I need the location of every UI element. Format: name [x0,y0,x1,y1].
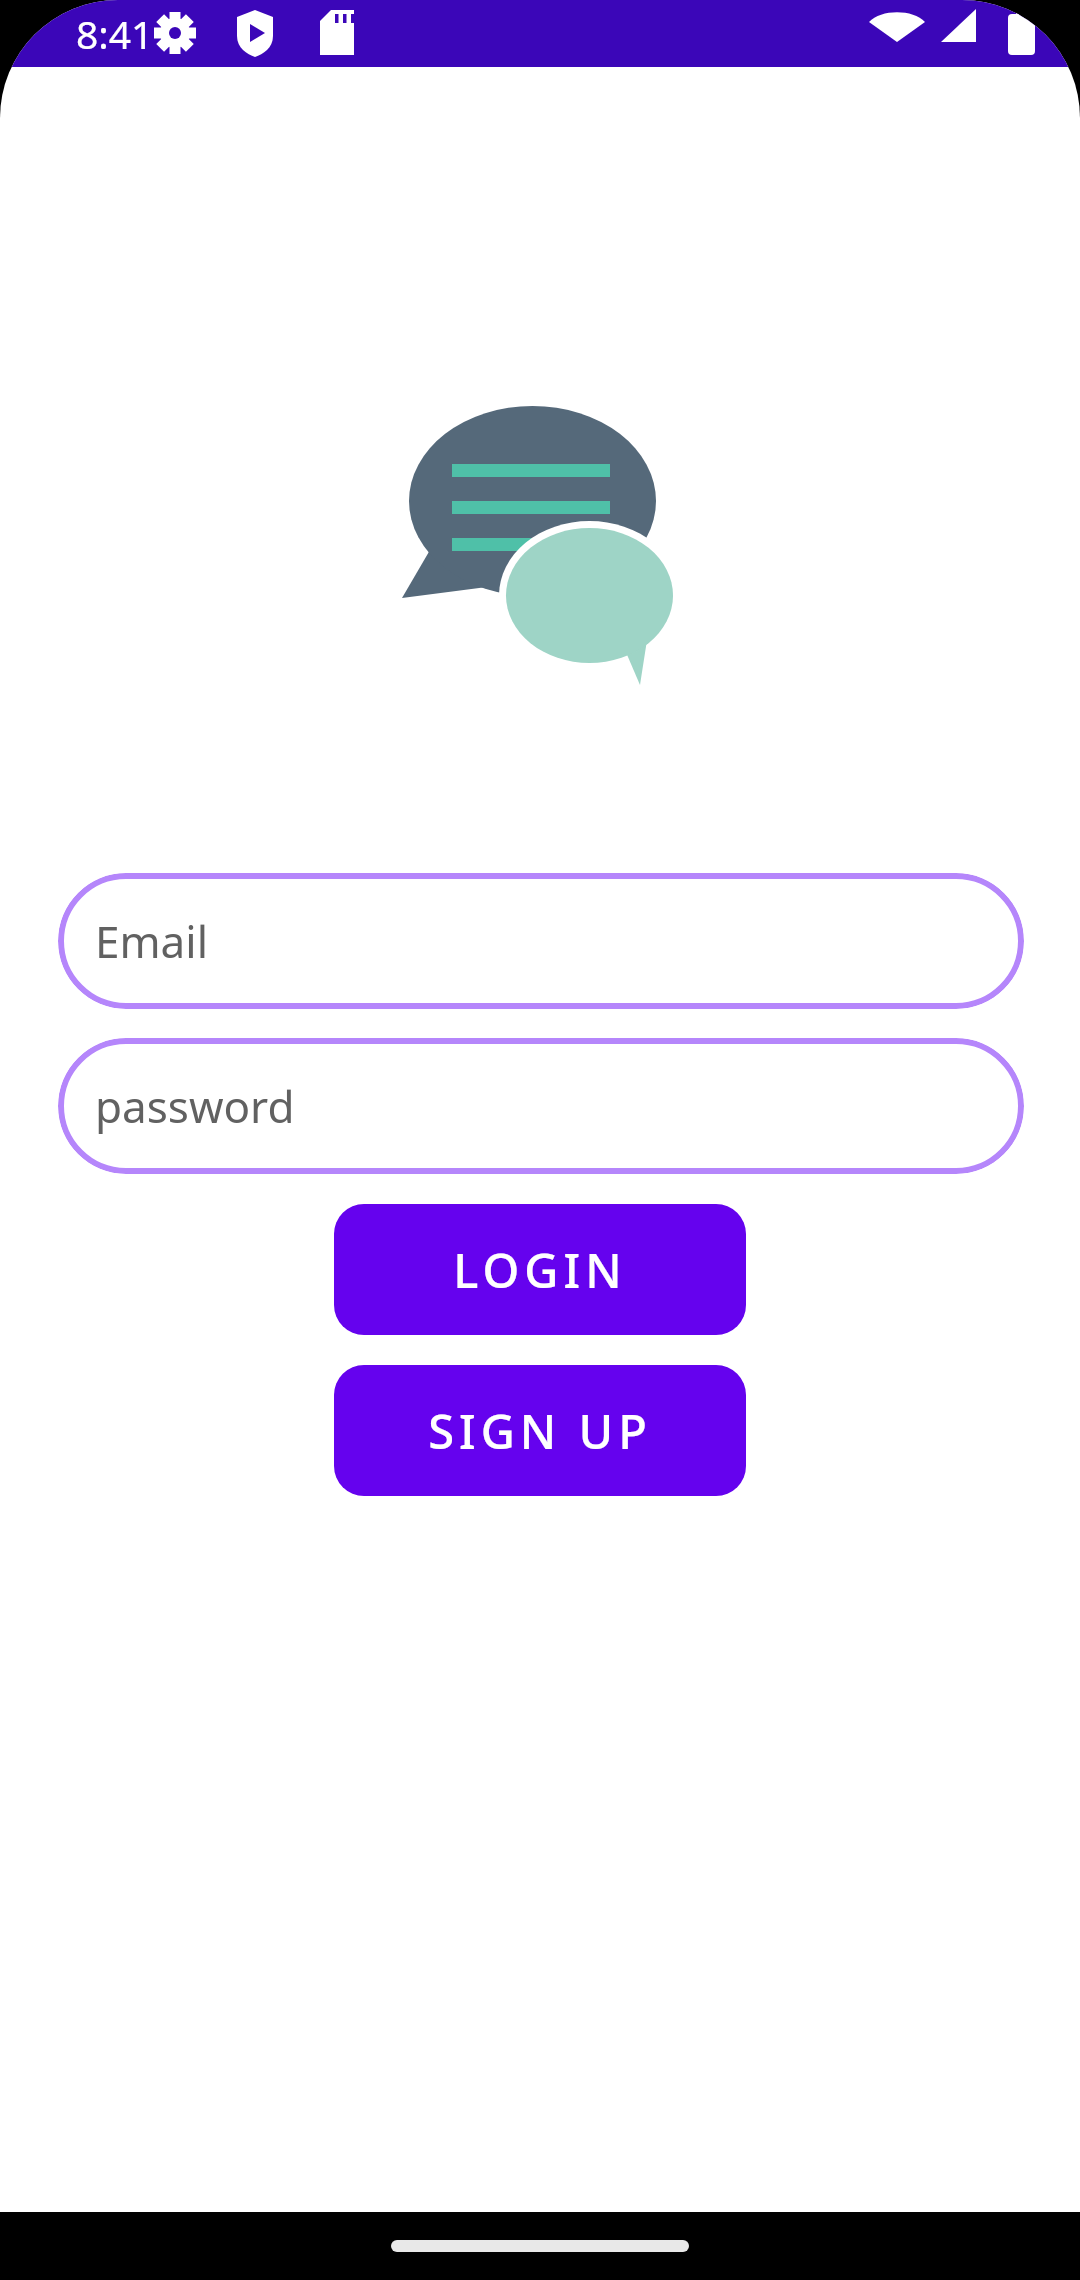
button[interactable]: LOGIN [334,1204,746,1335]
staticText: 8:41 [76,7,154,60]
button[interactable]: SIGN UP [334,1365,746,1496]
staticText: password [95,1076,295,1136]
other: Chat logo [400,400,690,690]
button[interactable]: Email [58,873,1024,1009]
staticText: LOGIN [453,1238,627,1302]
button[interactable]: password [58,1038,1024,1174]
staticText: Email [95,911,208,971]
staticText: SIGN UP [428,1399,652,1463]
